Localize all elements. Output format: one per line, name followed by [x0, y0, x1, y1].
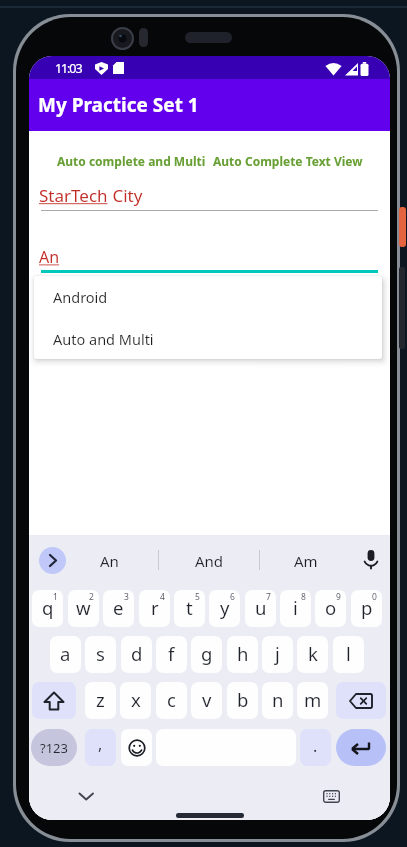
- staticText: k: [308, 641, 318, 666]
- staticText: a: [60, 641, 71, 666]
- button[interactable]: o: [315, 590, 346, 627]
- button[interactable]: [318, 785, 345, 809]
- staticText: 5: [195, 591, 200, 603]
- button[interactable]: f: [156, 636, 187, 673]
- button[interactable]: [360, 547, 382, 574]
- button[interactable]: r: [139, 590, 170, 627]
- button[interactable]: a: [50, 636, 81, 673]
- button[interactable]: u: [245, 590, 276, 627]
- button[interactable]: g: [191, 636, 222, 673]
- staticText: ,: [98, 733, 103, 755]
- staticText: ?123: [40, 739, 68, 757]
- button[interactable]: [121, 729, 152, 766]
- staticText: n: [272, 687, 284, 712]
- staticText: u: [255, 595, 267, 620]
- staticText: s: [96, 641, 105, 666]
- button[interactable]: .: [300, 729, 331, 766]
- staticText: r: [151, 595, 159, 620]
- staticText: d: [131, 641, 143, 666]
- button[interactable]: h: [227, 636, 258, 673]
- staticText: Android: [53, 287, 108, 307]
- staticText: City: [108, 184, 143, 207]
- staticText: And: [195, 551, 224, 571]
- button[interactable]: l: [333, 636, 364, 673]
- staticText: 11:03: [55, 60, 82, 77]
- button[interactable]: n: [262, 682, 293, 719]
- button[interactable]: i: [280, 590, 311, 627]
- button[interactable]: v: [191, 682, 222, 719]
- button[interactable]: [39, 547, 66, 574]
- button[interactable]: p: [351, 590, 382, 627]
- staticText: An: [100, 551, 119, 571]
- staticText: v: [202, 687, 212, 712]
- staticText: An: [39, 246, 60, 268]
- button[interactable]: [336, 729, 386, 766]
- staticText: q: [42, 595, 54, 620]
- staticText: c: [167, 687, 176, 712]
- staticText: t: [186, 595, 193, 620]
- button[interactable]: q: [32, 590, 63, 627]
- button[interactable]: e: [103, 590, 134, 627]
- staticText: 7: [266, 591, 271, 603]
- button[interactable]: j: [262, 636, 293, 673]
- button[interactable]: Auto and Multi: [34, 318, 382, 359]
- staticText: 3: [124, 591, 129, 603]
- button[interactable]: b: [227, 682, 258, 719]
- staticText: h: [237, 641, 249, 666]
- button[interactable]: [73, 785, 100, 809]
- button[interactable]: [32, 682, 76, 719]
- button[interactable]: ,: [85, 729, 116, 766]
- staticText: b: [237, 687, 249, 712]
- button[interactable]: y: [209, 590, 240, 627]
- staticText: l: [346, 641, 351, 666]
- staticText: Auto Complete Text View: [213, 153, 363, 169]
- staticText: p: [361, 595, 373, 620]
- staticText: j: [275, 641, 280, 666]
- button[interactable]: [336, 682, 386, 719]
- button[interactable]: t: [174, 590, 205, 627]
- staticText: 4: [160, 591, 165, 603]
- button[interactable]: And: [179, 544, 239, 577]
- staticText: StarTech: [39, 184, 108, 207]
- button[interactable]: c: [156, 682, 187, 719]
- button[interactable]: w: [68, 590, 99, 627]
- staticText: w: [76, 595, 91, 620]
- staticText: 0: [372, 591, 377, 603]
- staticText: Am: [294, 551, 318, 571]
- staticText: g: [201, 641, 213, 666]
- button[interactable]: k: [297, 636, 328, 673]
- staticText: 9: [336, 591, 341, 603]
- staticText: m: [304, 687, 322, 712]
- button[interactable]: ?123: [31, 729, 77, 766]
- button[interactable]: m: [297, 682, 328, 719]
- button[interactable]: z: [85, 682, 116, 719]
- staticText: My Practice Set 1: [38, 92, 199, 118]
- button[interactable]: Am: [276, 544, 336, 577]
- staticText: 8: [301, 591, 306, 603]
- staticText: 6: [230, 591, 235, 603]
- staticText: 1: [53, 591, 58, 603]
- staticText: e: [113, 595, 124, 620]
- staticText: y: [220, 595, 230, 620]
- staticText: o: [325, 595, 337, 620]
- staticText: i: [293, 595, 298, 620]
- button[interactable]: An: [79, 544, 139, 577]
- staticText: Auto and Multi: [53, 329, 154, 349]
- staticText: x: [131, 687, 141, 712]
- button[interactable]: Android: [34, 276, 382, 318]
- button[interactable]: d: [121, 636, 152, 673]
- staticText: z: [96, 687, 105, 712]
- staticText: Auto complete and Multi: [57, 153, 206, 169]
- staticText: .: [313, 735, 318, 757]
- staticText: 2: [89, 591, 94, 603]
- button[interactable]: s: [85, 636, 116, 673]
- staticText: f: [168, 641, 175, 666]
- button[interactable]: x: [120, 682, 151, 719]
